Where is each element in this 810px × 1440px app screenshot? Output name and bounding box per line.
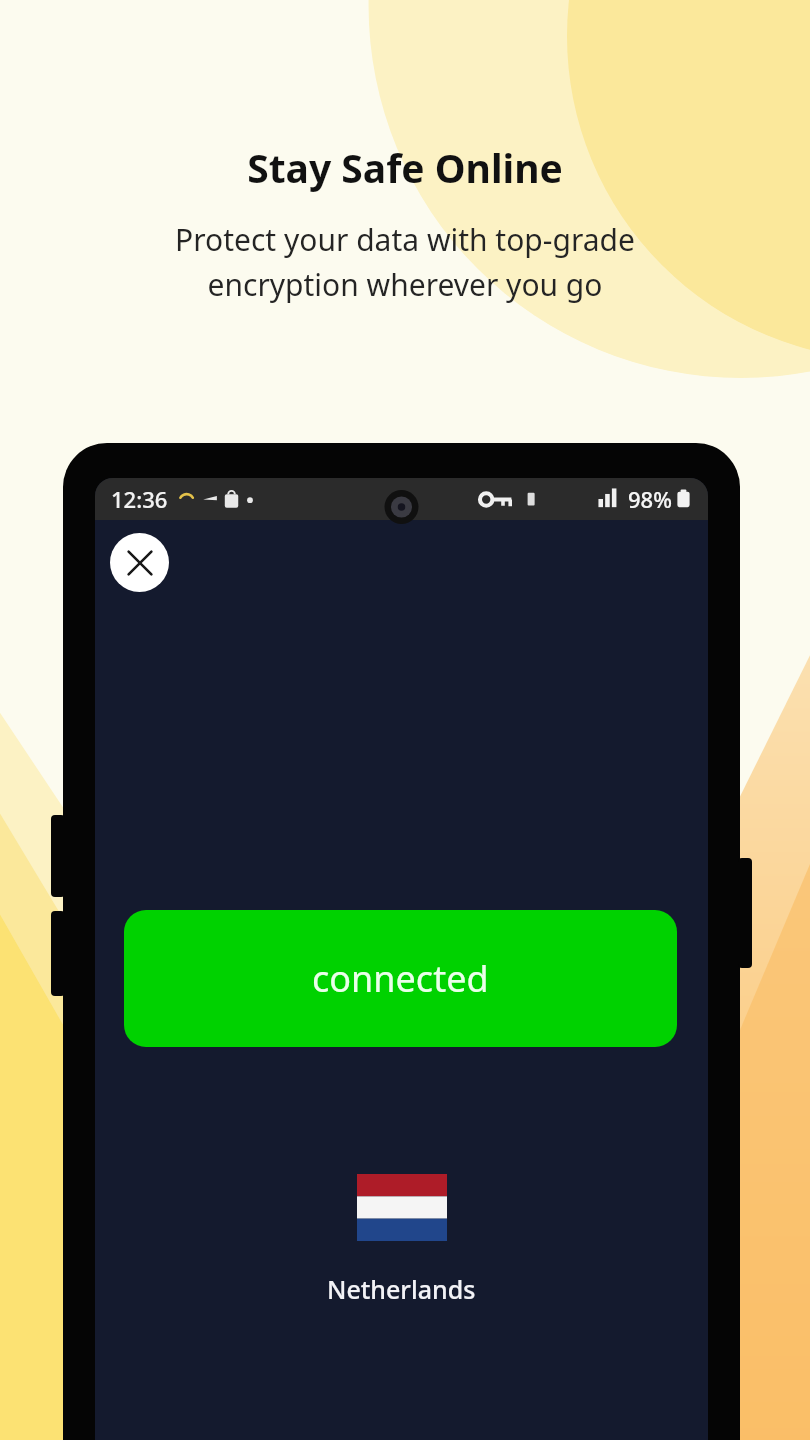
staticText: Stay Safe Online	[247, 141, 563, 194]
staticText: 98%	[628, 484, 672, 514]
staticText: Protect your data with top-grade encrypt…	[175, 219, 635, 305]
button[interactable]	[357, 1174, 447, 1241]
button[interactable]: Close	[110, 533, 169, 592]
staticText: 12:36	[111, 484, 168, 514]
button[interactable]: connected	[124, 910, 677, 1047]
staticText: connected	[312, 954, 489, 1003]
staticText: Netherlands	[327, 1272, 476, 1306]
